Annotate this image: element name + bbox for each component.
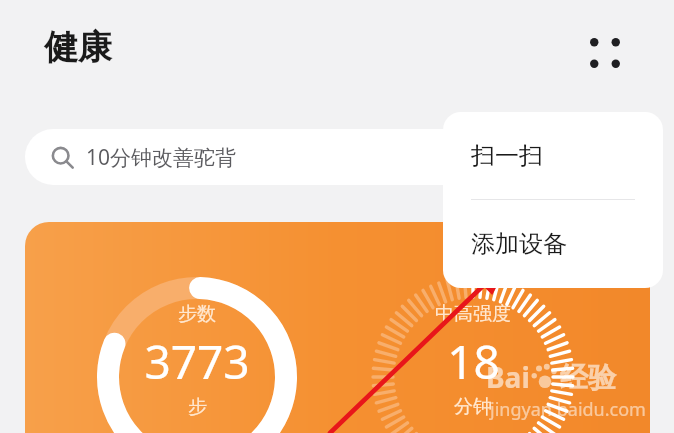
staticText: 扫一扫: [471, 141, 543, 171]
button[interactable]: 步数: [25, 222, 650, 433]
staticText: 添加设备: [471, 229, 567, 259]
button[interactable]: 10分钟改善驼背: [25, 129, 503, 185]
staticText: 步数: [178, 302, 216, 326]
button[interactable]: 扫一扫: [443, 112, 663, 199]
staticText: Bai: [486, 358, 530, 396]
staticText: 10分钟改善驼背: [86, 143, 237, 172]
staticText: 18: [447, 330, 500, 393]
button[interactable]: More options: [578, 26, 632, 80]
staticText: 经验: [560, 360, 616, 395]
staticText: 步: [188, 395, 207, 419]
staticText: 3773: [144, 330, 250, 393]
staticText: jingyan.baidu.com: [490, 397, 646, 422]
staticText: 分钟: [454, 395, 492, 419]
staticText: 健康: [44, 26, 112, 69]
staticText: 中高强度: [435, 302, 511, 326]
button[interactable]: 添加设备: [443, 200, 663, 288]
